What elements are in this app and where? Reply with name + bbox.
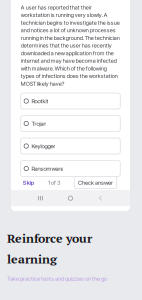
staticText: 1 of 3 [48,179,60,186]
button[interactable]: Rootkit [21,93,120,109]
button[interactable]: Trojan [21,115,120,131]
staticText: Take practice tests and quizzes on the g… [7,275,107,282]
button[interactable]: Check answer [74,176,117,188]
button[interactable]: Back [85,191,115,205]
staticText: Trojan [31,120,46,127]
button[interactable]: Ransomware [21,160,120,176]
staticText: Keylogger [31,142,55,150]
button[interactable]: Home [55,191,85,205]
staticText: Rootkit [31,97,48,105]
staticText: Check answer [78,179,113,186]
button[interactable]: Skip [21,176,34,188]
button[interactable]: Recent apps [25,191,55,205]
staticText: Skip [23,179,34,186]
staticText: Ransomware [31,165,63,172]
staticText: A user has reported that their workstati… [21,4,120,87]
staticText: Reinforce your [7,230,92,246]
button[interactable]: Keylogger [21,138,120,154]
staticText: learning [7,251,57,267]
